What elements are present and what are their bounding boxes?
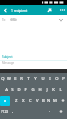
staticText: C [29,98,32,104]
button[interactable]: More options [57,5,67,15]
button[interactable]: S [9,84,15,95]
button[interactable]: C [27,95,34,106]
button[interactable]: Z [13,95,20,106]
staticText: L [59,87,62,93]
button[interactable]: O [53,73,60,84]
staticText: Y [34,76,37,82]
staticText: V [36,98,39,104]
staticText: D [17,87,21,93]
button[interactable]: Back [0,5,10,15]
button[interactable]: Y [32,73,39,84]
button[interactable]: P [60,73,67,84]
staticText: X [22,98,25,104]
button[interactable]: X [20,95,27,106]
staticText: Subject [2,55,13,59]
button[interactable]: V [34,95,40,106]
button[interactable]: Shift [0,96,10,106]
staticText: S [11,87,14,93]
button[interactable]: K [50,84,57,95]
staticText: Q [1,76,5,82]
button[interactable]: A [3,84,9,95]
button[interactable]: Attach file [44,5,54,15]
staticText: T [27,76,30,82]
staticText: W [7,76,11,82]
button[interactable]: M [52,95,58,106]
staticText: B [42,98,45,104]
staticText: U [41,76,45,82]
button[interactable]: N [46,95,52,106]
button[interactable]: ?123 [0,106,9,119]
staticText: G [31,87,35,93]
button[interactable]: Enter [54,106,67,119]
button[interactable]: R [18,73,25,84]
button[interactable]: T [25,73,32,84]
button[interactable]: B [40,95,46,106]
button[interactable]: D [15,84,22,95]
staticText: Z [15,98,18,104]
button[interactable]: Backspace [58,95,67,106]
button[interactable]: H [36,84,43,95]
staticText: A [5,87,8,93]
staticText: R [20,76,23,82]
button[interactable]: , [9,106,17,119]
staticText: E [14,76,17,82]
button[interactable]: W [6,73,12,84]
staticText: . [49,108,51,114]
staticText: , [12,108,14,114]
staticText: M [53,98,57,104]
staticText: ?123 [1,109,9,114]
staticText: F [24,87,27,93]
staticText: 1 recipient [11,8,28,12]
button[interactable]: J [43,84,50,95]
staticText: O [55,76,59,82]
staticText: J [46,87,48,93]
button[interactable]: . [45,106,54,119]
staticText: N [47,98,51,104]
button[interactable]: Q [0,73,6,84]
button[interactable]: G [29,84,36,95]
staticText: To [2,18,6,22]
button[interactable]: L [57,84,64,95]
staticText: Message [2,61,15,65]
staticText: P [62,76,65,82]
button[interactable]: I [46,73,53,84]
button[interactable]: To [0,15,67,24]
staticText: H [38,87,42,93]
staticText: I [49,76,51,82]
button[interactable]: F [22,84,29,95]
staticText: Ma [13,18,17,21]
button[interactable]: E [12,73,18,84]
button[interactable]: U [39,73,46,84]
staticText: K [52,87,55,93]
